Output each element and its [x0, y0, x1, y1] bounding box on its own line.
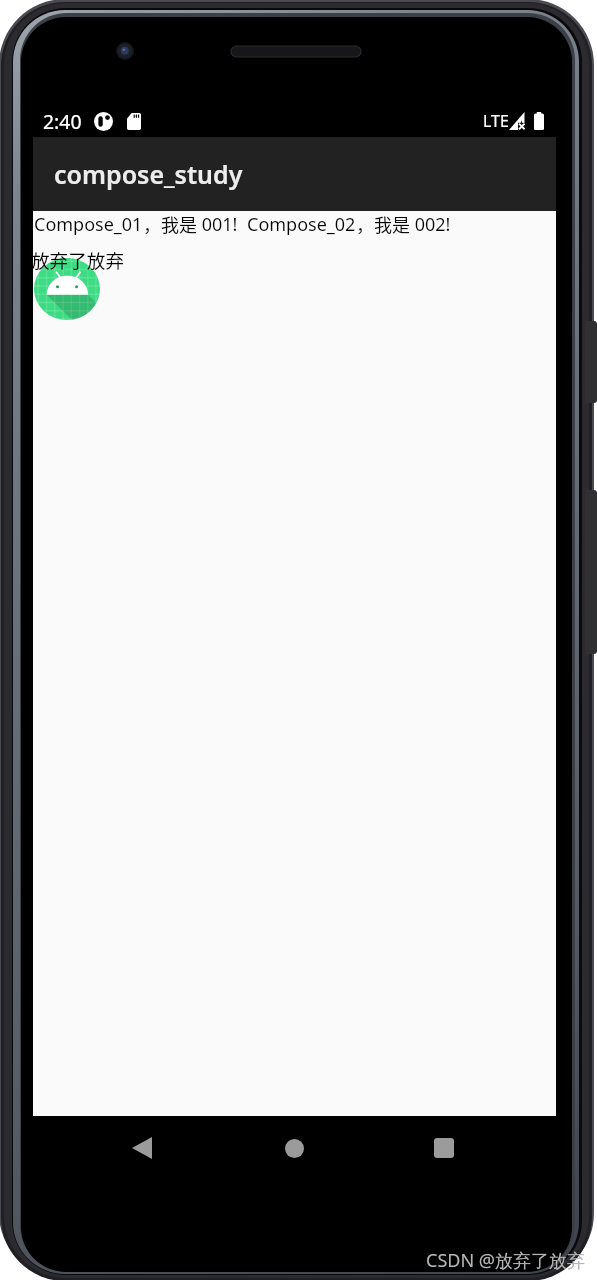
staticText: 002!	[410, 212, 451, 237]
staticText: ，	[356, 211, 374, 237]
staticText: 我是	[374, 211, 410, 237]
staticText: 2:40	[43, 108, 82, 134]
button[interactable]: Back	[108, 1116, 176, 1180]
staticText: Compose_01	[34, 212, 143, 237]
staticText: LTE	[483, 110, 509, 132]
button[interactable]: Recent apps	[410, 1116, 478, 1180]
staticText: compose_study	[54, 157, 243, 191]
staticText: ，	[143, 211, 161, 237]
staticText: 我是	[161, 211, 197, 237]
staticText: 放弃了放弃	[31, 246, 124, 273]
button[interactable]: Home	[260, 1116, 328, 1180]
staticText: CSDN @放弃了放弃	[426, 1248, 585, 1273]
staticText: Compose_02	[247, 212, 356, 237]
staticText: 001!	[197, 212, 247, 237]
